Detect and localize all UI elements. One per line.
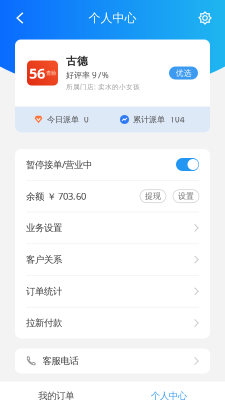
button[interactable]: 设置 xyxy=(192,5,218,31)
staticText: 优选 xyxy=(175,68,191,78)
staticText: 查验 xyxy=(46,70,56,76)
button[interactable]: 客服电话 xyxy=(15,348,210,373)
button[interactable]: 客户关系 xyxy=(15,244,210,275)
staticText: 设置 xyxy=(178,191,194,201)
staticText: 客户关系 xyxy=(26,254,62,265)
staticText: 古德 xyxy=(66,55,88,68)
button[interactable]: 优选 xyxy=(169,66,198,79)
staticText: 所属门店: 卖水的小女孩 xyxy=(66,82,140,91)
button[interactable]: 个人中心 xyxy=(112,381,225,400)
button[interactable]: 营业状态开关 xyxy=(176,158,199,171)
staticText: 个人中心 xyxy=(151,390,187,400)
button[interactable]: 订单统计 xyxy=(15,276,210,307)
staticText: 订单统计 xyxy=(26,286,62,297)
staticText: 业务设置 xyxy=(26,222,62,234)
staticText: 客服电话 xyxy=(42,355,78,367)
button[interactable]: 拉新付款 xyxy=(15,307,210,338)
button[interactable]: 提现 xyxy=(140,190,166,203)
button[interactable]: 业务设置 xyxy=(15,212,210,243)
staticText: 余额 ￥ 703.60 xyxy=(26,190,86,202)
staticText: 累计派单 xyxy=(133,115,165,124)
staticText: 0 xyxy=(84,114,89,125)
staticText: 提现 xyxy=(145,191,161,201)
staticText: 104 xyxy=(170,114,185,125)
button[interactable]: 返回 xyxy=(7,5,33,31)
button[interactable]: 我的订单 xyxy=(0,381,112,400)
staticText: 个人中心 xyxy=(88,11,136,25)
staticText: 我的订单 xyxy=(38,390,74,400)
staticText: 暂停接单/营业中 xyxy=(26,158,92,171)
staticText: 拉新付款 xyxy=(26,317,62,329)
staticText: 今日派单 xyxy=(47,115,79,124)
button[interactable]: 设置 xyxy=(173,190,199,203)
staticText: 56 xyxy=(29,63,45,83)
staticText: 好评率 97% xyxy=(66,70,109,80)
